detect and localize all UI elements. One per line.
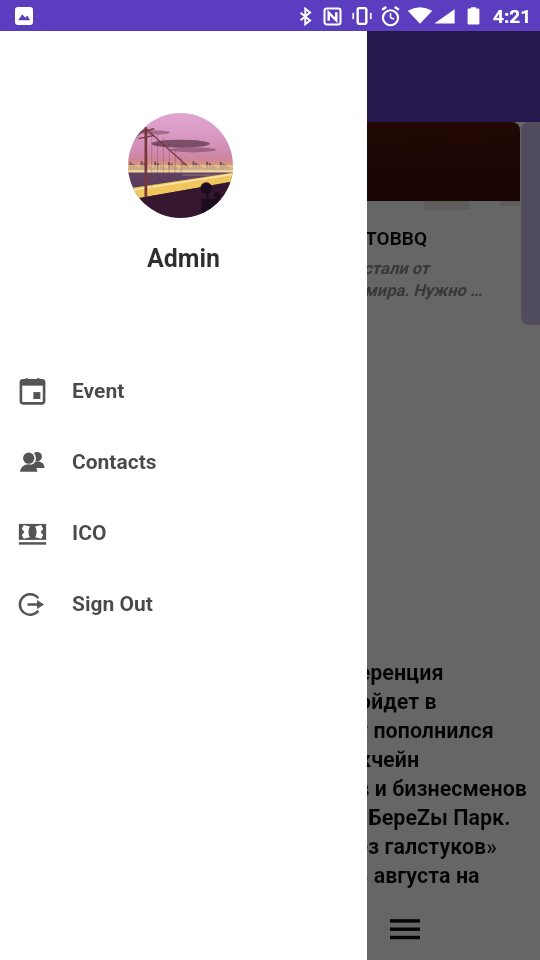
button[interactable]: Event [0, 356, 367, 427]
staticText: Admin [0, 244, 367, 273]
button[interactable]: Screenshot [15, 7, 33, 25]
staticText: Event [72, 379, 125, 404]
staticText: менов и бизнесменов [305, 776, 527, 801]
button[interactable]: BITCOIN GROWTH CONFERENCE 2018 TOBBQ [16, 122, 520, 325]
staticText: 4:21 [493, 5, 532, 27]
staticText: Sign Out [72, 592, 153, 617]
staticText: Contacts [72, 450, 157, 475]
staticText: ия пройдет в [305, 689, 437, 714]
button[interactable]: Contacts [0, 427, 367, 498]
staticText: Многие люди в нашем мире давно очень уст… [30, 259, 483, 300]
staticText: й блокчейн [305, 747, 420, 772]
button[interactable]: Sign Out [0, 569, 367, 640]
staticText: Конференция [305, 660, 444, 685]
staticText: о счет пополнился [305, 718, 494, 743]
button[interactable]: Menu [381, 908, 429, 956]
button[interactable]: Profile photo [122, 107, 239, 224]
staticText: ится 8 августа на [305, 863, 480, 888]
staticText: отеля БереZы Парк. [305, 805, 511, 830]
button[interactable]: ICO [0, 498, 367, 569]
staticText: уб «без галстуков» [305, 834, 497, 859]
staticText: ICO [72, 521, 107, 546]
staticText: BITCOIN GROWTH CONFERENCE 2018 TOBBQ [30, 227, 427, 249]
